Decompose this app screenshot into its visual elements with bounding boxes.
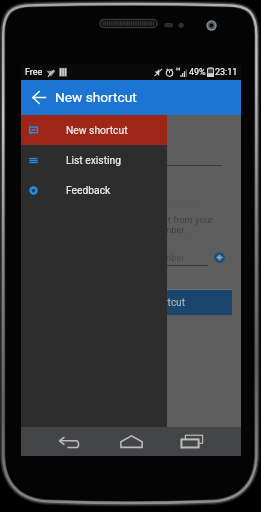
button[interactable]: Add contact [214, 252, 225, 263]
button[interactable]: Create shortcut [31, 289, 232, 315]
staticText: Feedback [66, 184, 111, 196]
button[interactable]: Home [101, 427, 161, 456]
button[interactable]: Recent apps [162, 427, 222, 456]
button[interactable]: New shortcut [21, 115, 167, 145]
staticText: Enter contact name or phone number [31, 252, 185, 263]
button[interactable]: Feedback [21, 175, 167, 205]
staticText: 23:11 [215, 67, 238, 78]
staticText: New shortcut [66, 124, 128, 136]
staticText: Free [25, 67, 43, 78]
staticText: New shortcut [55, 89, 137, 105]
staticText: Create a shortcut to call a contact from… [31, 214, 213, 236]
staticText: Shortcut name [31, 152, 91, 163]
staticText: List existing [66, 154, 122, 166]
staticText: Create shortcut [116, 297, 185, 309]
button[interactable]: Back [22, 80, 56, 114]
button[interactable]: List existing [21, 145, 167, 175]
staticText: 49% [189, 67, 206, 78]
button[interactable]: Back [39, 427, 99, 456]
